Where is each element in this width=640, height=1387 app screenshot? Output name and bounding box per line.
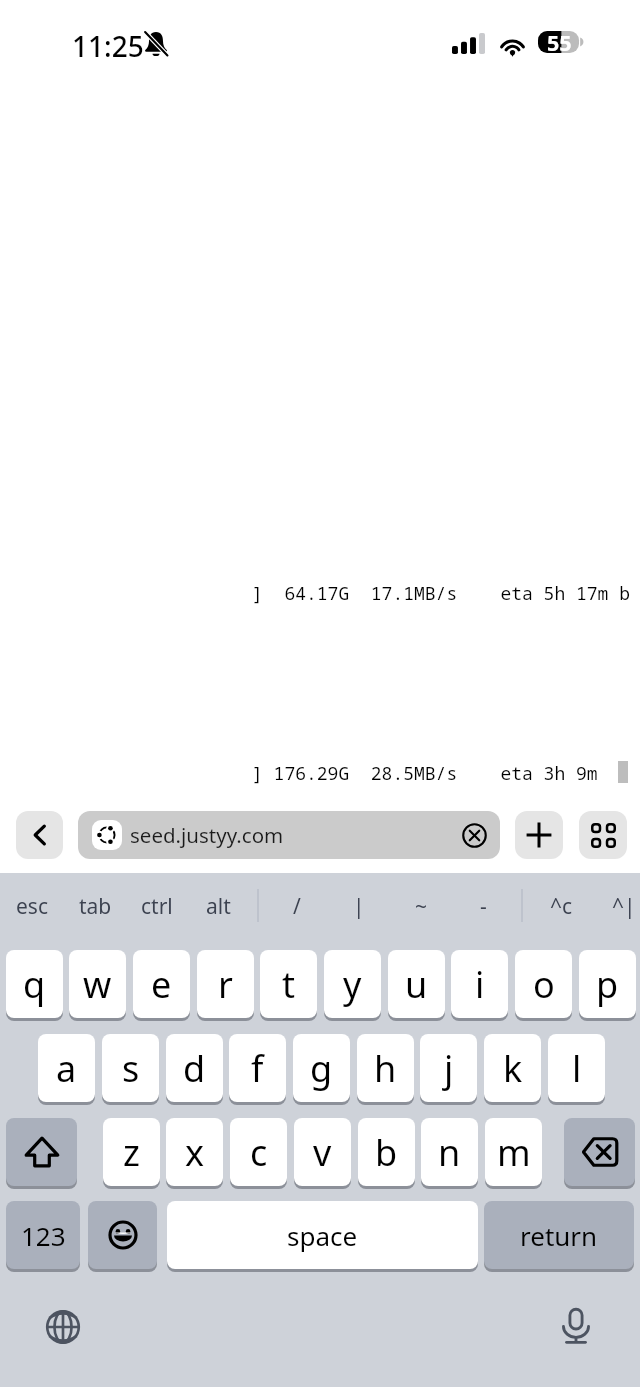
staticText: ~	[415, 892, 428, 921]
button[interactable]: m	[485, 1118, 542, 1186]
button[interactable]: b	[358, 1118, 415, 1186]
staticText: |	[353, 892, 365, 921]
button[interactable]: Shift	[6, 1118, 77, 1186]
button[interactable]: 123	[6, 1201, 80, 1269]
button[interactable]: n	[421, 1118, 478, 1186]
staticText: m	[497, 1128, 531, 1177]
staticText: j	[444, 1044, 454, 1093]
button[interactable]: i	[451, 950, 508, 1018]
button[interactable]: alt	[187, 881, 249, 931]
staticText: i	[475, 960, 485, 1009]
button[interactable]: seed.justyy.com	[78, 811, 500, 859]
button[interactable]: r	[197, 950, 254, 1018]
staticText: t	[282, 960, 295, 1009]
button[interactable]: d	[166, 1034, 223, 1102]
button[interactable]: s	[102, 1034, 159, 1102]
staticText: g	[310, 1044, 333, 1093]
button[interactable]: tab	[64, 881, 126, 931]
staticText: h	[374, 1044, 397, 1093]
staticText: ^c	[550, 892, 573, 921]
button[interactable]: g	[293, 1034, 350, 1102]
staticText: c	[250, 1128, 268, 1177]
staticText: b	[375, 1128, 398, 1177]
staticText: 123	[21, 1218, 66, 1253]
button[interactable]: New tab	[515, 811, 563, 859]
button[interactable]: q	[6, 950, 63, 1018]
staticText: esc	[16, 892, 48, 921]
staticText: a	[56, 1044, 77, 1093]
button[interactable]: space	[167, 1201, 478, 1269]
button[interactable]: Dictate	[541, 1291, 611, 1361]
button[interactable]: c	[230, 1118, 287, 1186]
staticText: v	[313, 1128, 332, 1177]
button[interactable]: ~	[390, 881, 452, 931]
staticText: return	[520, 1218, 598, 1253]
staticText: k	[503, 1044, 523, 1093]
staticText: space	[287, 1218, 358, 1253]
button[interactable]: return	[484, 1201, 634, 1269]
staticText: r	[218, 960, 233, 1009]
staticText: /	[293, 892, 301, 921]
staticText: y	[343, 960, 362, 1009]
button[interactable]: esc	[1, 881, 63, 931]
button[interactable]: ^|	[593, 881, 640, 931]
staticText: x	[185, 1128, 205, 1177]
staticText: tab	[79, 892, 112, 921]
button[interactable]: w	[69, 950, 126, 1018]
button[interactable]: Backspace	[564, 1118, 635, 1186]
button[interactable]: z	[103, 1118, 160, 1186]
button[interactable]: ^c	[530, 881, 592, 931]
staticText: ] 176.29G 28.5MB/s eta 3h 9m	[252, 761, 609, 786]
staticText: f	[251, 1044, 264, 1093]
button[interactable]: Emoji	[88, 1201, 157, 1269]
staticText: 55	[547, 28, 572, 57]
button[interactable]: y	[324, 950, 381, 1018]
staticText: w	[83, 960, 112, 1009]
button[interactable]: |	[328, 881, 390, 931]
button[interactable]: p	[579, 950, 636, 1018]
staticText: ctrl	[141, 892, 173, 921]
button[interactable]: x	[166, 1118, 223, 1186]
button[interactable]: h	[357, 1034, 414, 1102]
button[interactable]: k	[484, 1034, 541, 1102]
staticText: u	[405, 960, 428, 1009]
staticText: ] 64.17G 17.1MB/s eta 5h 17m b	[252, 581, 630, 606]
button[interactable]: /	[266, 881, 328, 931]
staticText: d	[183, 1044, 206, 1093]
button[interactable]: -	[452, 881, 514, 931]
button[interactable]: a	[38, 1034, 95, 1102]
button[interactable]: u	[388, 950, 445, 1018]
button[interactable]: o	[515, 950, 572, 1018]
staticText: alt	[206, 892, 231, 921]
button[interactable]: l	[548, 1034, 605, 1102]
staticText: p	[596, 960, 619, 1009]
button[interactable]: Tabs	[579, 811, 627, 859]
staticText: e	[151, 960, 172, 1009]
button[interactable]: Change keyboard	[28, 1292, 98, 1362]
button[interactable]: t	[260, 950, 317, 1018]
staticText: s	[122, 1044, 140, 1093]
staticText: -	[480, 892, 487, 921]
staticText: z	[123, 1128, 140, 1177]
staticText: o	[533, 960, 555, 1009]
button[interactable]: e	[133, 950, 190, 1018]
button[interactable]: f	[229, 1034, 286, 1102]
button[interactable]: Back	[16, 811, 63, 859]
button[interactable]: j	[420, 1034, 477, 1102]
staticText: l	[572, 1044, 582, 1093]
staticText: seed.justyy.com	[130, 821, 284, 849]
button[interactable]: v	[294, 1118, 351, 1186]
button[interactable]: ctrl	[126, 881, 188, 931]
staticText: q	[23, 960, 46, 1009]
staticText: n	[438, 1128, 461, 1177]
staticText: ^|	[612, 892, 636, 921]
staticText: 11:25	[72, 27, 144, 65]
